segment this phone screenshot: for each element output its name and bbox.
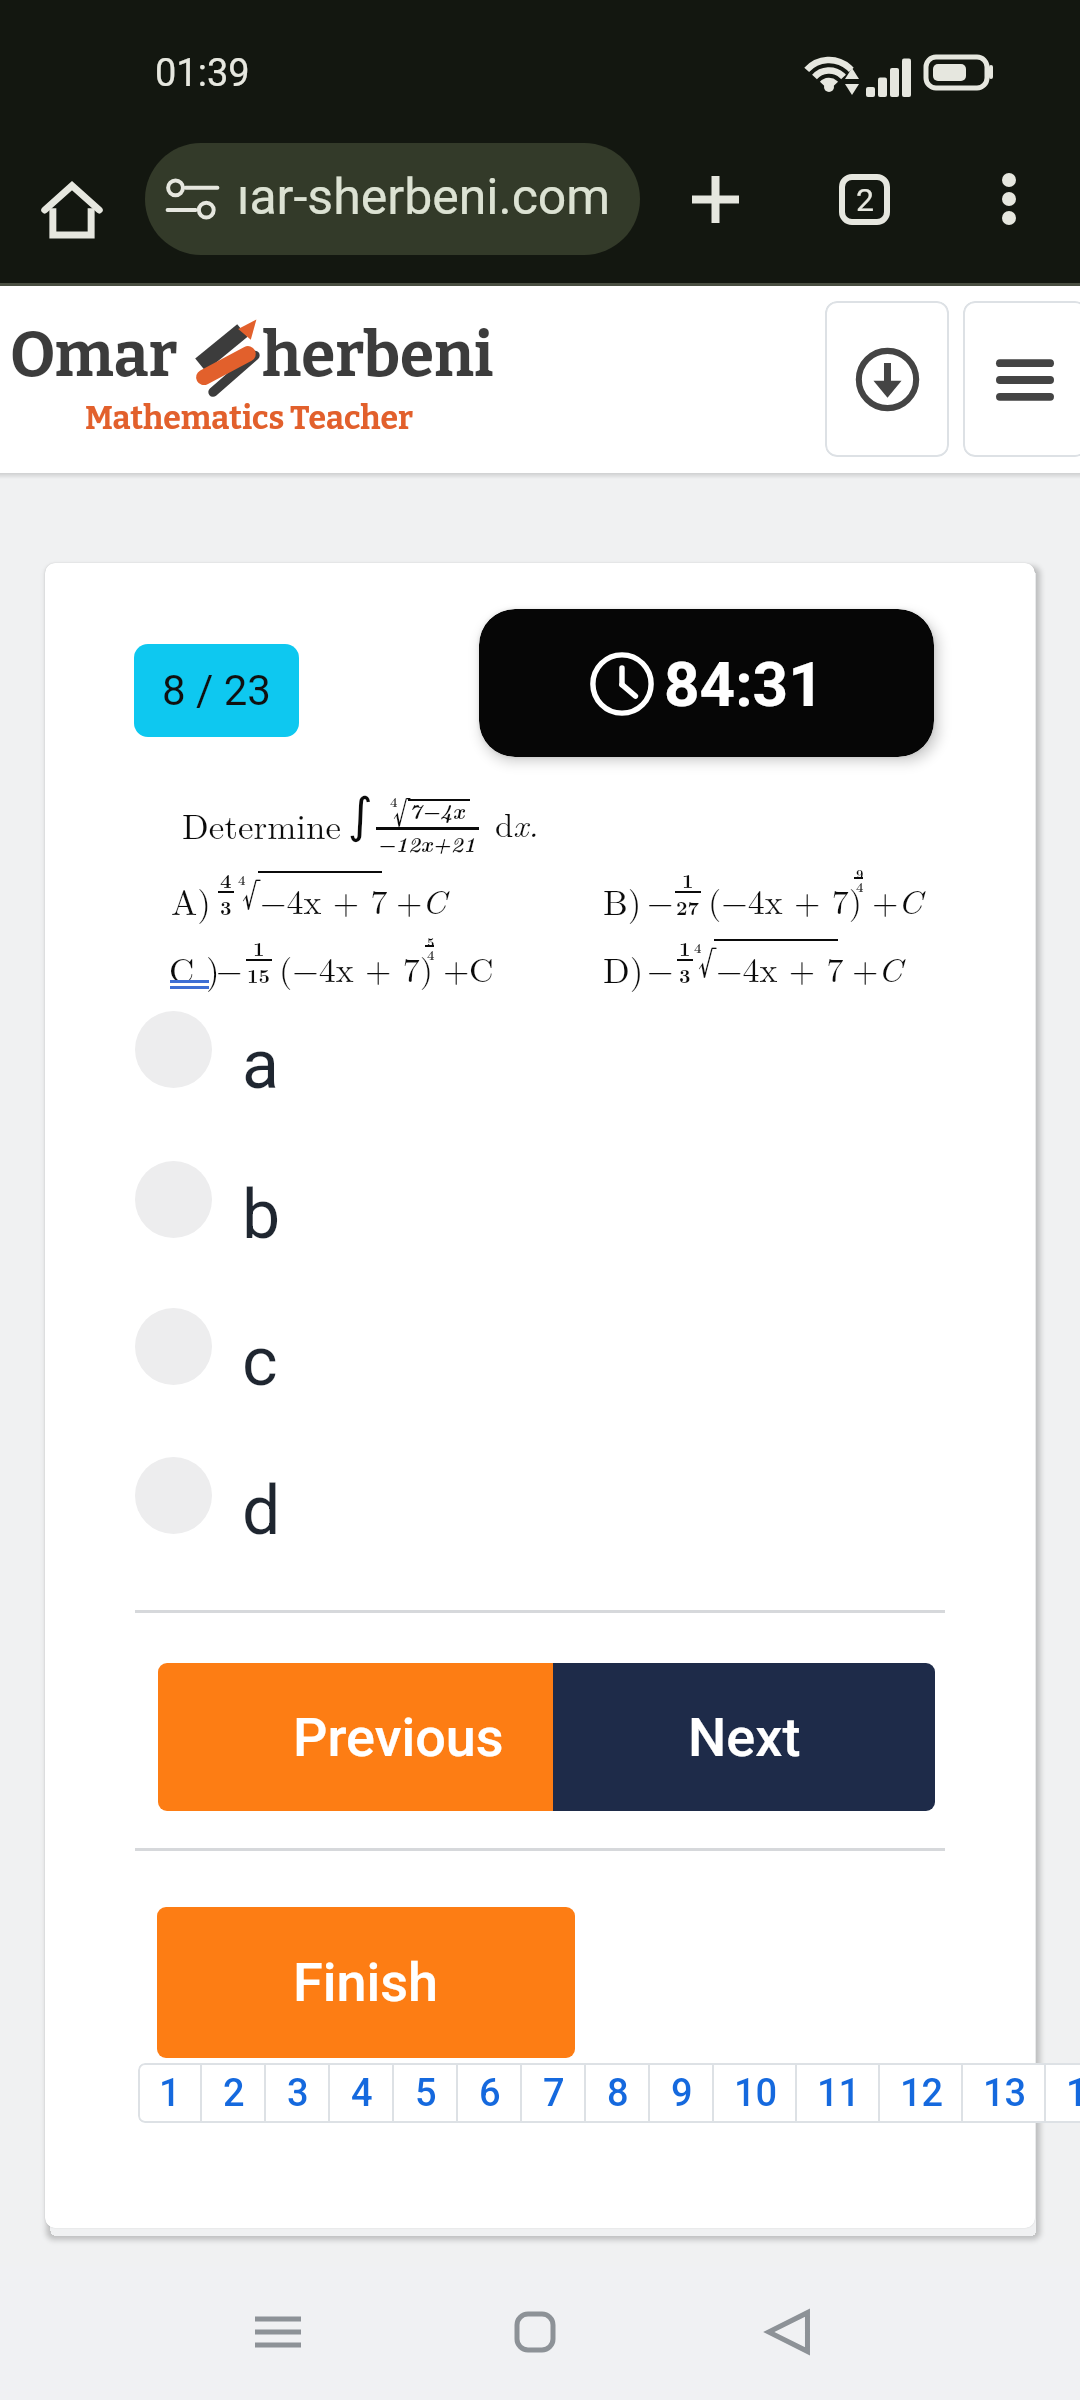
button[interactable]: 13 (963, 2063, 1046, 2123)
button[interactable]: Recents (218, 2272, 338, 2392)
staticText: + (852, 944, 890, 992)
staticText: 12 (900, 2071, 944, 2116)
button[interactable]: d (125, 1456, 955, 1534)
staticText: 14 (1066, 2071, 1080, 2116)
staticText: B) (603, 876, 642, 926)
staticText: (−4x + 7) (279, 944, 433, 992)
staticText: 4 (220, 865, 232, 894)
staticText: Finish (293, 1951, 439, 2014)
button[interactable]: 8 (586, 2063, 650, 2123)
button[interactable]: Home (475, 2272, 595, 2392)
staticText: −4x + 7 (260, 876, 388, 924)
staticText: 7 (543, 2071, 565, 2116)
staticText: D) (603, 944, 644, 994)
staticText: 13 (983, 2071, 1027, 2116)
staticText: √ (242, 865, 259, 916)
staticText: 3 (679, 960, 691, 989)
staticText: − (647, 944, 674, 992)
staticText: 4 (238, 870, 246, 889)
staticText: 84:31 (664, 648, 824, 721)
staticText: 4 (694, 938, 702, 957)
button[interactable]: 5 (394, 2063, 458, 2123)
staticText: 6 (479, 2071, 501, 2116)
staticText: − (647, 876, 674, 924)
button[interactable]: 7 (522, 2063, 586, 2123)
staticText: x. (513, 800, 539, 847)
button[interactable]: 1 (138, 2063, 202, 2123)
button[interactable]: c (125, 1307, 955, 1385)
staticText: c (242, 1322, 278, 1400)
staticText: 15 (247, 960, 270, 989)
staticText: 1 (679, 933, 691, 962)
staticText: C (422, 876, 447, 924)
staticText: 27 (676, 892, 699, 921)
staticText: + (396, 876, 434, 924)
staticText: 9 (856, 864, 864, 883)
button[interactable]: Menu (963, 301, 1080, 457)
staticText: 1 (682, 865, 694, 894)
staticText: 4 (427, 945, 435, 964)
staticText: 4 (351, 2071, 373, 2116)
staticText: Previous (293, 1706, 504, 1769)
button[interactable]: 11 (797, 2063, 880, 2123)
staticText: 7−4x (409, 795, 465, 826)
staticText: 01:39 (155, 51, 250, 96)
button[interactable]: Next (553, 1663, 935, 1811)
button[interactable]: Switch tabs, 2 open (816, 151, 912, 247)
staticText: C (898, 876, 923, 924)
staticText: 1 (253, 933, 265, 962)
button[interactable]: 14 (1046, 2063, 1080, 2123)
staticText: 3 (220, 892, 232, 921)
staticText: Next (688, 1706, 801, 1769)
staticText: 3 (287, 2071, 309, 2116)
button[interactable]: 9 (650, 2063, 714, 2123)
staticText: 5 (427, 932, 435, 951)
staticText: 2 (223, 2071, 245, 2116)
staticText: ıar-sherbeni.com (237, 168, 611, 227)
staticText: (−4x + 7) (708, 876, 862, 924)
button[interactable]: b (125, 1160, 955, 1238)
button[interactable]: Finish (157, 1907, 575, 2058)
button[interactable]: ıar-sherbeni.com (145, 143, 640, 255)
button[interactable]: Download (825, 301, 949, 457)
button[interactable]: Home (24, 162, 120, 258)
staticText: ∫ (348, 787, 374, 843)
staticText: + (872, 876, 910, 924)
staticText: a (242, 1025, 279, 1103)
staticText: herbeni (262, 318, 494, 392)
staticText: C ) (169, 944, 220, 994)
staticText: −12x+21 (377, 828, 476, 859)
button[interactable]: 2 (202, 2063, 266, 2123)
staticText: 11 (817, 2071, 861, 2116)
staticText: d (242, 1471, 281, 1549)
staticText: 5 (415, 2071, 437, 2116)
button[interactable]: a (125, 1010, 955, 1088)
staticText: d (495, 800, 514, 847)
staticText: A) (171, 876, 211, 926)
button[interactable]: Previous (158, 1663, 553, 1811)
staticText: √ (393, 785, 410, 833)
staticText: C (469, 944, 494, 992)
button[interactable]: 3 (266, 2063, 330, 2123)
staticText: 4 (390, 792, 398, 811)
button[interactable]: 12 (880, 2063, 963, 2123)
button[interactable]: More options (961, 151, 1057, 247)
button[interactable]: 8 / 23 (134, 644, 299, 737)
staticText: b (242, 1175, 281, 1253)
button[interactable]: 4 (330, 2063, 394, 2123)
staticText: 9 (671, 2071, 693, 2116)
staticText: 4 (856, 877, 864, 896)
staticText: Determine (182, 800, 342, 850)
button[interactable]: Back (729, 2272, 849, 2392)
staticText: 8 (607, 2071, 629, 2116)
button[interactable]: 10 (714, 2063, 797, 2123)
button[interactable]: New tab (667, 151, 763, 247)
staticText: 8 / 23 (162, 666, 271, 715)
staticText: −4x + 7 (716, 944, 844, 992)
staticText: Omar (10, 318, 178, 392)
staticText: + (443, 944, 481, 992)
staticText: 2 (856, 181, 874, 219)
staticText: 1 (159, 2071, 181, 2116)
button[interactable]: 6 (458, 2063, 522, 2123)
staticText: − (216, 944, 243, 992)
